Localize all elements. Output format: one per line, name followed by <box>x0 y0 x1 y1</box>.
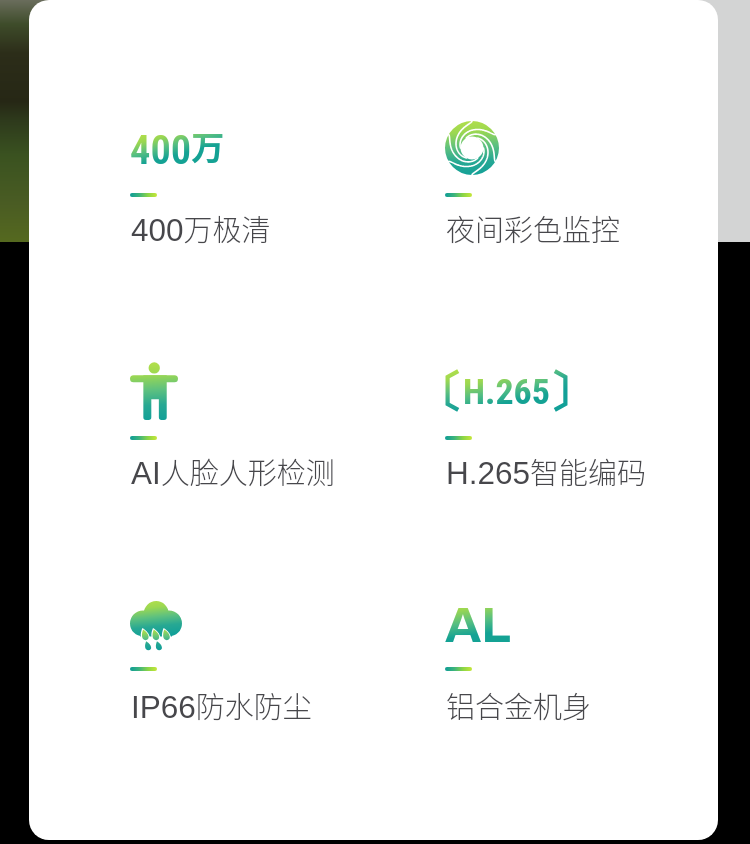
button[interactable] <box>130 362 430 491</box>
staticText: 铝合金机身 <box>446 684 592 726</box>
button[interactable] <box>130 601 430 725</box>
staticText: H.265 <box>463 371 550 413</box>
staticText: H.265智能编码 <box>446 450 647 492</box>
other: IP66 waterproof and dustproof <box>130 601 182 650</box>
staticText: 400万 <box>130 122 225 174</box>
staticText: 400万极清 <box>131 207 271 249</box>
staticText: AI人脸人形检测 <box>131 450 335 492</box>
other: AI face and body detection <box>130 362 178 420</box>
button[interactable] <box>445 120 718 248</box>
staticText: AL <box>445 598 511 652</box>
other: Night colour monitoring <box>445 120 499 176</box>
button[interactable] <box>445 369 718 491</box>
staticText: 夜间彩色监控 <box>446 207 621 249</box>
button[interactable] <box>445 598 718 725</box>
staticText: IP66防水防尘 <box>131 684 312 726</box>
button[interactable] <box>130 122 430 248</box>
